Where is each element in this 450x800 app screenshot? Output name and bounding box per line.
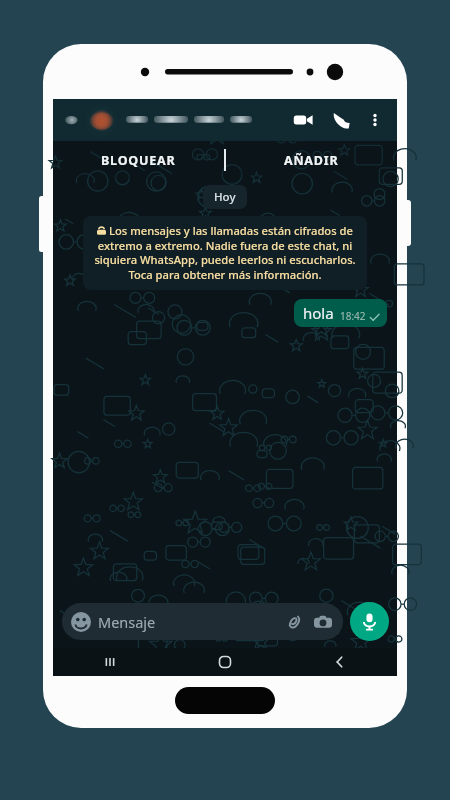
staticText: 18:42	[340, 309, 366, 323]
button[interactable]: Record voice message	[350, 602, 389, 641]
button[interactable]: Attach	[283, 611, 305, 633]
button[interactable]: Video call	[288, 105, 318, 135]
staticText: BLOQUEAR	[101, 152, 176, 169]
button[interactable]: Recents	[53, 648, 167, 676]
button[interactable]: Hoy	[214, 189, 236, 205]
button[interactable]: Camera	[312, 611, 334, 633]
button[interactable]: Los mensajes y las llamadas están cifrad…	[93, 223, 357, 283]
button[interactable]: Mensaje	[71, 603, 334, 640]
staticText: extremo a extremo. Nadie fuera de este c…	[94, 238, 356, 283]
button[interactable]: AÑADIR	[226, 141, 397, 179]
staticText: AÑADIR	[284, 152, 339, 169]
button[interactable]: Back	[282, 648, 397, 676]
staticText: hola	[303, 303, 334, 323]
button[interactable]: More options	[362, 107, 388, 133]
button[interactable]: Home	[167, 648, 282, 676]
staticText: Mensaje	[98, 612, 283, 632]
button[interactable]: Back	[62, 110, 82, 130]
button[interactable]: Call	[326, 105, 356, 135]
button[interactable]: BLOQUEAR	[53, 141, 224, 179]
staticText: Hoy	[214, 189, 236, 205]
staticText: Los mensajes y las llamadas están cifrad…	[109, 223, 353, 238]
button[interactable]: hola	[303, 303, 380, 323]
